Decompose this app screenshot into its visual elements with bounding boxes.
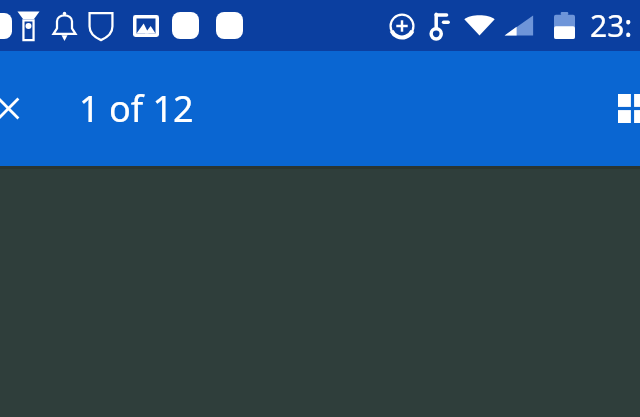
staticText: 1 of 12 [79,84,194,133]
button[interactable]: Close [0,51,42,166]
button[interactable]: Grid view [598,51,640,166]
staticText: 23: [590,5,633,46]
